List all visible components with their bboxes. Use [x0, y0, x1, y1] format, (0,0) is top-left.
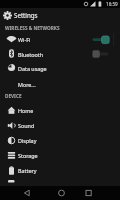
button[interactable]: More... — [0, 78, 120, 91]
button[interactable]: Bluetooth — [0, 47, 120, 61]
staticText: More... — [18, 81, 36, 88]
button[interactable]: Battery — [0, 163, 120, 178]
button[interactable]: Data usage — [0, 61, 120, 75]
button[interactable]: Home — [0, 103, 120, 118]
staticText: DEVICE — [5, 93, 22, 99]
button[interactable] — [17, 186, 37, 200]
staticText: Sound — [18, 122, 35, 129]
staticText: Bluetooth — [18, 51, 44, 58]
button[interactable]: Storage — [0, 148, 120, 163]
button[interactable]: Settings — [0, 8, 120, 23]
button[interactable]: Sound — [0, 118, 120, 133]
staticText: Data usage — [18, 65, 47, 72]
button[interactable]: Wi-Fi — [0, 32, 120, 47]
staticText: 16:59 — [106, 1, 118, 7]
staticText: Home — [18, 107, 34, 114]
staticText: Settings — [14, 11, 38, 19]
staticText: Battery — [18, 167, 37, 174]
button[interactable] — [51, 186, 71, 200]
staticText: Display — [18, 137, 37, 144]
staticText: Wi-Fi — [18, 36, 31, 43]
staticText: Storage — [18, 152, 38, 159]
button[interactable] — [78, 186, 98, 200]
staticText: WIRELESS & NETWORKS — [5, 25, 60, 31]
button[interactable]: Display — [0, 133, 120, 148]
